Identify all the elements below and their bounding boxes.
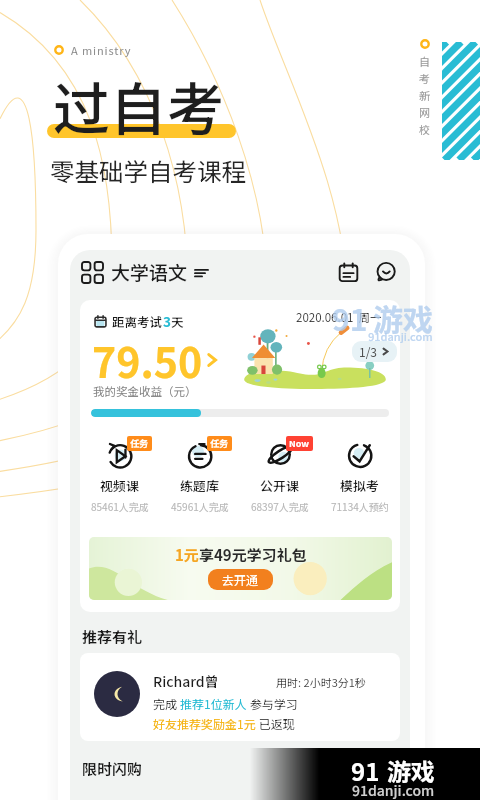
staticText: 已返现 bbox=[256, 715, 295, 732]
staticText: Richard曾 bbox=[153, 671, 219, 691]
button[interactable]: 去开通 bbox=[208, 569, 273, 590]
button[interactable]: Messages bbox=[375, 262, 396, 283]
staticText: 45961人完成 bbox=[171, 499, 229, 513]
staticText: 91 bbox=[332, 296, 368, 339]
button[interactable]: Now bbox=[240, 437, 320, 513]
staticText: A ministry bbox=[71, 42, 132, 58]
staticText: 大学语文 bbox=[111, 258, 188, 286]
staticText: 好友推荐奖励金1元 bbox=[153, 715, 256, 732]
staticText: 我的奖金收益（元） bbox=[93, 383, 197, 400]
staticText: 网 bbox=[419, 104, 430, 120]
staticText: 用时: 2小时3分1秒 bbox=[276, 674, 366, 690]
staticText: 2020.06.01 周一 bbox=[296, 309, 382, 326]
staticText: 1元 bbox=[175, 544, 199, 566]
staticText: 距离考试 bbox=[112, 312, 163, 330]
staticText: 推荐1位新人 bbox=[180, 695, 247, 712]
staticText: 过自考 bbox=[53, 64, 224, 147]
button[interactable]: 任务 bbox=[80, 437, 160, 513]
staticText: 享49元学习礼包 bbox=[199, 544, 307, 566]
staticText: 参与学习 bbox=[247, 695, 298, 712]
staticText: 新 bbox=[419, 87, 430, 103]
staticText: 去开通 bbox=[222, 571, 259, 588]
button[interactable]: Categories bbox=[82, 262, 103, 283]
staticText: 3 bbox=[163, 311, 171, 331]
staticText: 零基础学自考课程 bbox=[50, 153, 246, 188]
staticText: 79.50 bbox=[92, 330, 203, 389]
staticText: 考 bbox=[419, 70, 430, 86]
staticText: 公开课 bbox=[260, 476, 300, 495]
staticText: 模拟考 bbox=[340, 476, 380, 495]
staticText: 1/3 bbox=[359, 343, 378, 360]
button[interactable]: Richard曾 bbox=[80, 653, 400, 741]
staticText: 完成 bbox=[153, 695, 180, 712]
staticText: Now bbox=[289, 437, 310, 450]
button[interactable]: 任务 bbox=[160, 437, 240, 513]
staticText: 91 bbox=[351, 753, 380, 788]
staticText: 校 bbox=[419, 121, 430, 137]
button[interactable]: Calendar bbox=[338, 262, 359, 283]
staticText: 视频课 bbox=[100, 476, 140, 495]
staticText: 天 bbox=[171, 312, 184, 330]
staticText: 68397人完成 bbox=[251, 499, 309, 513]
button[interactable]: 1元 bbox=[89, 537, 392, 600]
staticText: 游戏 bbox=[373, 296, 433, 339]
staticText: 85461人完成 bbox=[91, 499, 149, 513]
staticText: 91danji.com bbox=[368, 328, 433, 344]
staticText: 限时闪购 bbox=[82, 758, 143, 780]
staticText: 91danji.com bbox=[352, 780, 435, 800]
staticText: 自 bbox=[419, 53, 430, 69]
staticText: 71134人预约 bbox=[331, 499, 389, 513]
staticText: 游戏 bbox=[387, 753, 435, 788]
staticText: 任务 bbox=[210, 437, 229, 450]
button[interactable]: 模拟考 bbox=[320, 437, 400, 513]
button[interactable]: 1/3 bbox=[352, 341, 397, 362]
staticText: 练题库 bbox=[180, 476, 220, 495]
staticText: 任务 bbox=[130, 437, 149, 450]
staticText: 推荐有礼 bbox=[82, 626, 143, 648]
